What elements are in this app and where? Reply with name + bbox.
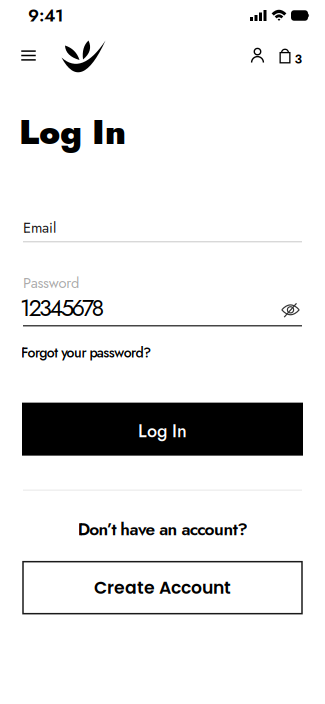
staticText: 12345678 xyxy=(20,291,104,325)
staticText: Log In xyxy=(19,107,126,157)
staticText: Don’t have an account? xyxy=(78,517,247,542)
staticText: Create Account xyxy=(94,576,231,600)
button[interactable]: Show password xyxy=(281,302,300,319)
button[interactable]: Forgot your password? xyxy=(21,342,151,363)
button[interactable]: Menu xyxy=(21,50,36,61)
button[interactable]: Create Account xyxy=(23,562,302,614)
staticText: Log In xyxy=(138,418,187,444)
staticText: Forgot your password? xyxy=(21,342,151,363)
staticText: Email xyxy=(23,217,56,238)
staticText: 9:41 xyxy=(28,3,64,28)
button[interactable]: Cart, 3 items xyxy=(279,46,302,65)
staticText: 3 xyxy=(294,50,302,68)
staticText: Password xyxy=(23,272,79,293)
button[interactable]: Account xyxy=(250,46,264,64)
button[interactable]: Log In xyxy=(22,403,303,456)
